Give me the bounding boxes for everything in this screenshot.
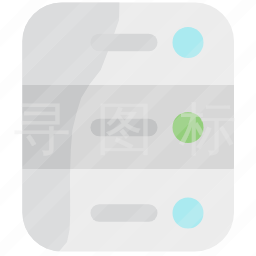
button[interactable]: List view icon (0, 0, 256, 256)
